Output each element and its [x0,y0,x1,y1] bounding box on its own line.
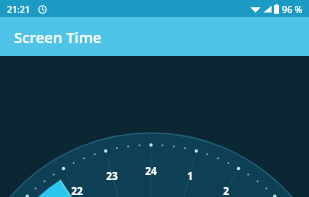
staticText: 1 [187,169,193,183]
button[interactable]: Screen Time [0,17,309,56]
staticText: 22 [71,184,83,197]
staticText: 23 [106,169,118,183]
staticText: Screen Time [14,27,102,47]
button[interactable]: 24 hour screen time usage dial [0,56,309,197]
staticText: 21:21 [7,3,31,15]
staticText: 96 % [282,3,303,15]
staticText: 24 [145,164,157,178]
staticText: 2 [223,184,229,197]
